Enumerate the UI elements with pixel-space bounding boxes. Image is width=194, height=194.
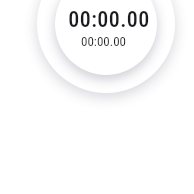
staticText: 00:00.00: [68, 7, 150, 33]
staticText: 00:00.00: [81, 34, 126, 49]
